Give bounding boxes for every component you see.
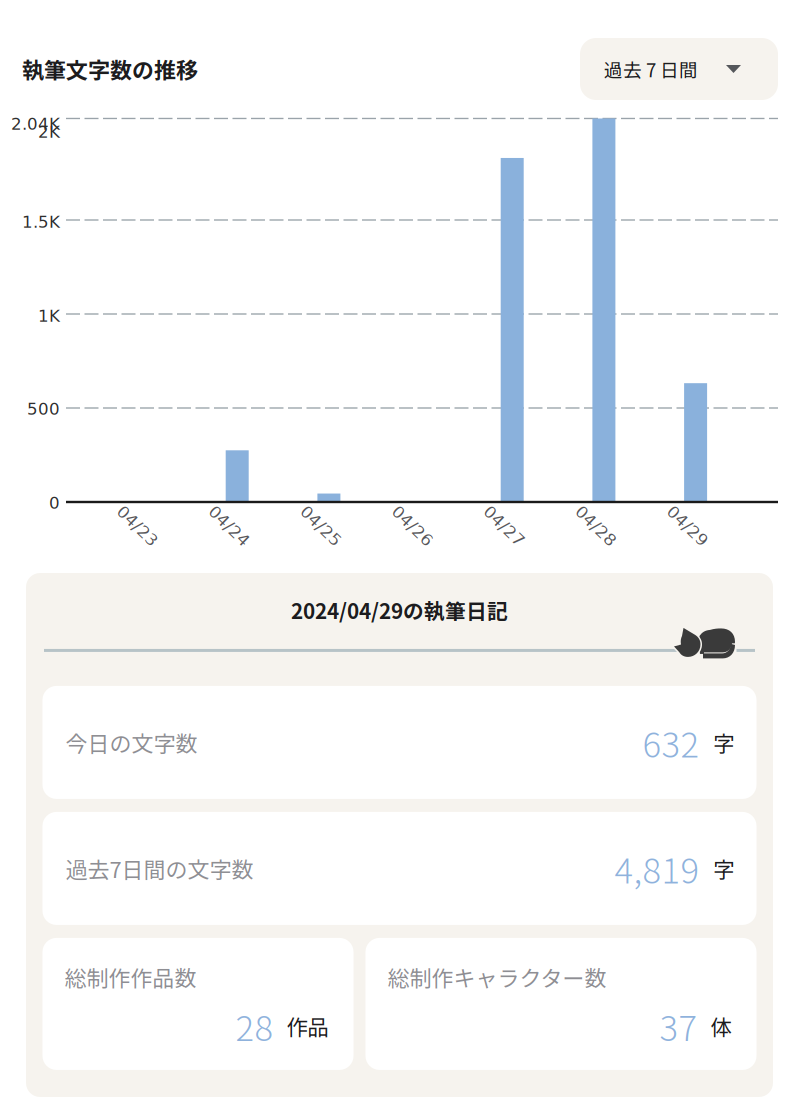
button[interactable]: 今日の文字数 <box>42 686 756 799</box>
staticText: 04/29 <box>663 516 713 536</box>
button[interactable]: 過去7日間の文字数 <box>42 812 756 925</box>
staticText: 字 <box>713 727 734 758</box>
staticText: 500 <box>27 399 60 419</box>
staticText: 0 <box>49 493 60 513</box>
staticText: 04/25 <box>296 516 346 536</box>
staticText: 2K <box>38 122 60 142</box>
button[interactable]: 総制作キャラクター数 <box>365 938 756 1070</box>
staticText: 1.5K <box>22 212 60 232</box>
staticText: 4,819 <box>614 843 699 893</box>
button[interactable]: 総制作作品数 <box>42 938 353 1070</box>
staticText: 28 <box>235 1001 273 1051</box>
staticText: 37 <box>659 1001 697 1051</box>
staticText: 執筆文字数の推移 <box>22 53 198 85</box>
staticText: 04/28 <box>571 516 621 536</box>
staticText: 字 <box>713 853 734 884</box>
staticText: 04/27 <box>479 516 529 536</box>
staticText: 過去7日間の文字数 <box>65 852 253 884</box>
staticText: 2024/04/29の執筆日記 <box>291 595 508 625</box>
staticText: 2.04K <box>11 114 60 134</box>
staticText: 体 <box>710 1010 731 1041</box>
staticText: 今日の文字数 <box>65 726 197 758</box>
staticText: 過去 7 日間 <box>604 55 698 82</box>
staticText: 632 <box>642 717 699 767</box>
staticText: 総制作キャラクター数 <box>387 961 606 993</box>
button[interactable]: 過去 7 日間 <box>580 38 778 100</box>
staticText: 04/23 <box>112 516 162 536</box>
staticText: 作品 <box>286 1010 328 1041</box>
staticText: 総制作作品数 <box>64 961 196 993</box>
staticText: 1K <box>38 306 60 326</box>
staticText: 04/24 <box>204 516 254 536</box>
staticText: 04/26 <box>388 516 438 536</box>
